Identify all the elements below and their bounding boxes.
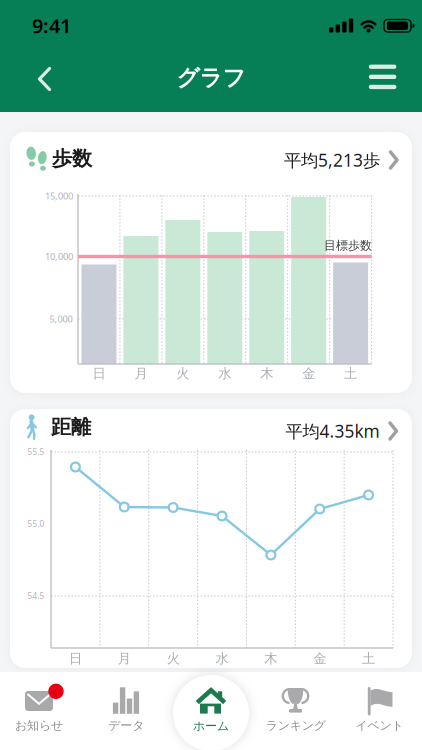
- staticText: 金: [302, 365, 315, 382]
- staticText: 歩数: [52, 146, 92, 171]
- staticText: 土: [344, 365, 357, 382]
- button[interactable]: データ: [85, 672, 169, 750]
- staticText: 平均4.35km: [285, 419, 379, 442]
- staticText: 10,000: [45, 250, 73, 263]
- staticText: 9:41: [32, 12, 71, 39]
- staticText: 木: [264, 650, 277, 667]
- staticText: 平均5,213歩: [284, 148, 380, 171]
- button[interactable]: Menu: [361, 55, 405, 99]
- staticText: 木: [260, 365, 273, 382]
- button[interactable]: お知らせ: [0, 672, 84, 750]
- button[interactable]: イベント: [338, 672, 422, 750]
- staticText: 日: [69, 650, 82, 667]
- staticText: 5,000: [49, 313, 72, 325]
- button[interactable]: ランキング: [253, 672, 337, 750]
- staticText: 54.5: [27, 591, 44, 601]
- staticText: 15,000: [45, 190, 73, 202]
- staticText: データ: [108, 718, 144, 733]
- staticText: 55.0: [27, 519, 44, 529]
- staticText: 55.5: [27, 447, 44, 457]
- staticText: イベント: [355, 718, 403, 733]
- staticText: 金: [313, 650, 326, 667]
- staticText: 火: [167, 650, 180, 667]
- staticText: 月: [134, 365, 147, 382]
- button[interactable]: Back: [22, 57, 66, 101]
- staticText: 日: [92, 365, 105, 382]
- staticText: 水: [218, 365, 231, 382]
- staticText: お知らせ: [15, 718, 63, 733]
- staticText: 目標歩数: [324, 238, 372, 253]
- staticText: ホーム: [193, 719, 229, 733]
- staticText: ランキング: [266, 718, 326, 733]
- button[interactable]: 平均5,213歩: [284, 148, 398, 171]
- staticText: 土: [362, 650, 375, 667]
- button[interactable]: 平均4.35km: [285, 419, 397, 442]
- staticText: 水: [215, 650, 228, 667]
- staticText: 火: [176, 365, 189, 382]
- button[interactable]: ホーム: [169, 672, 253, 750]
- staticText: 月: [118, 650, 131, 667]
- staticText: グラフ: [176, 64, 245, 92]
- staticText: 距離: [51, 415, 91, 439]
